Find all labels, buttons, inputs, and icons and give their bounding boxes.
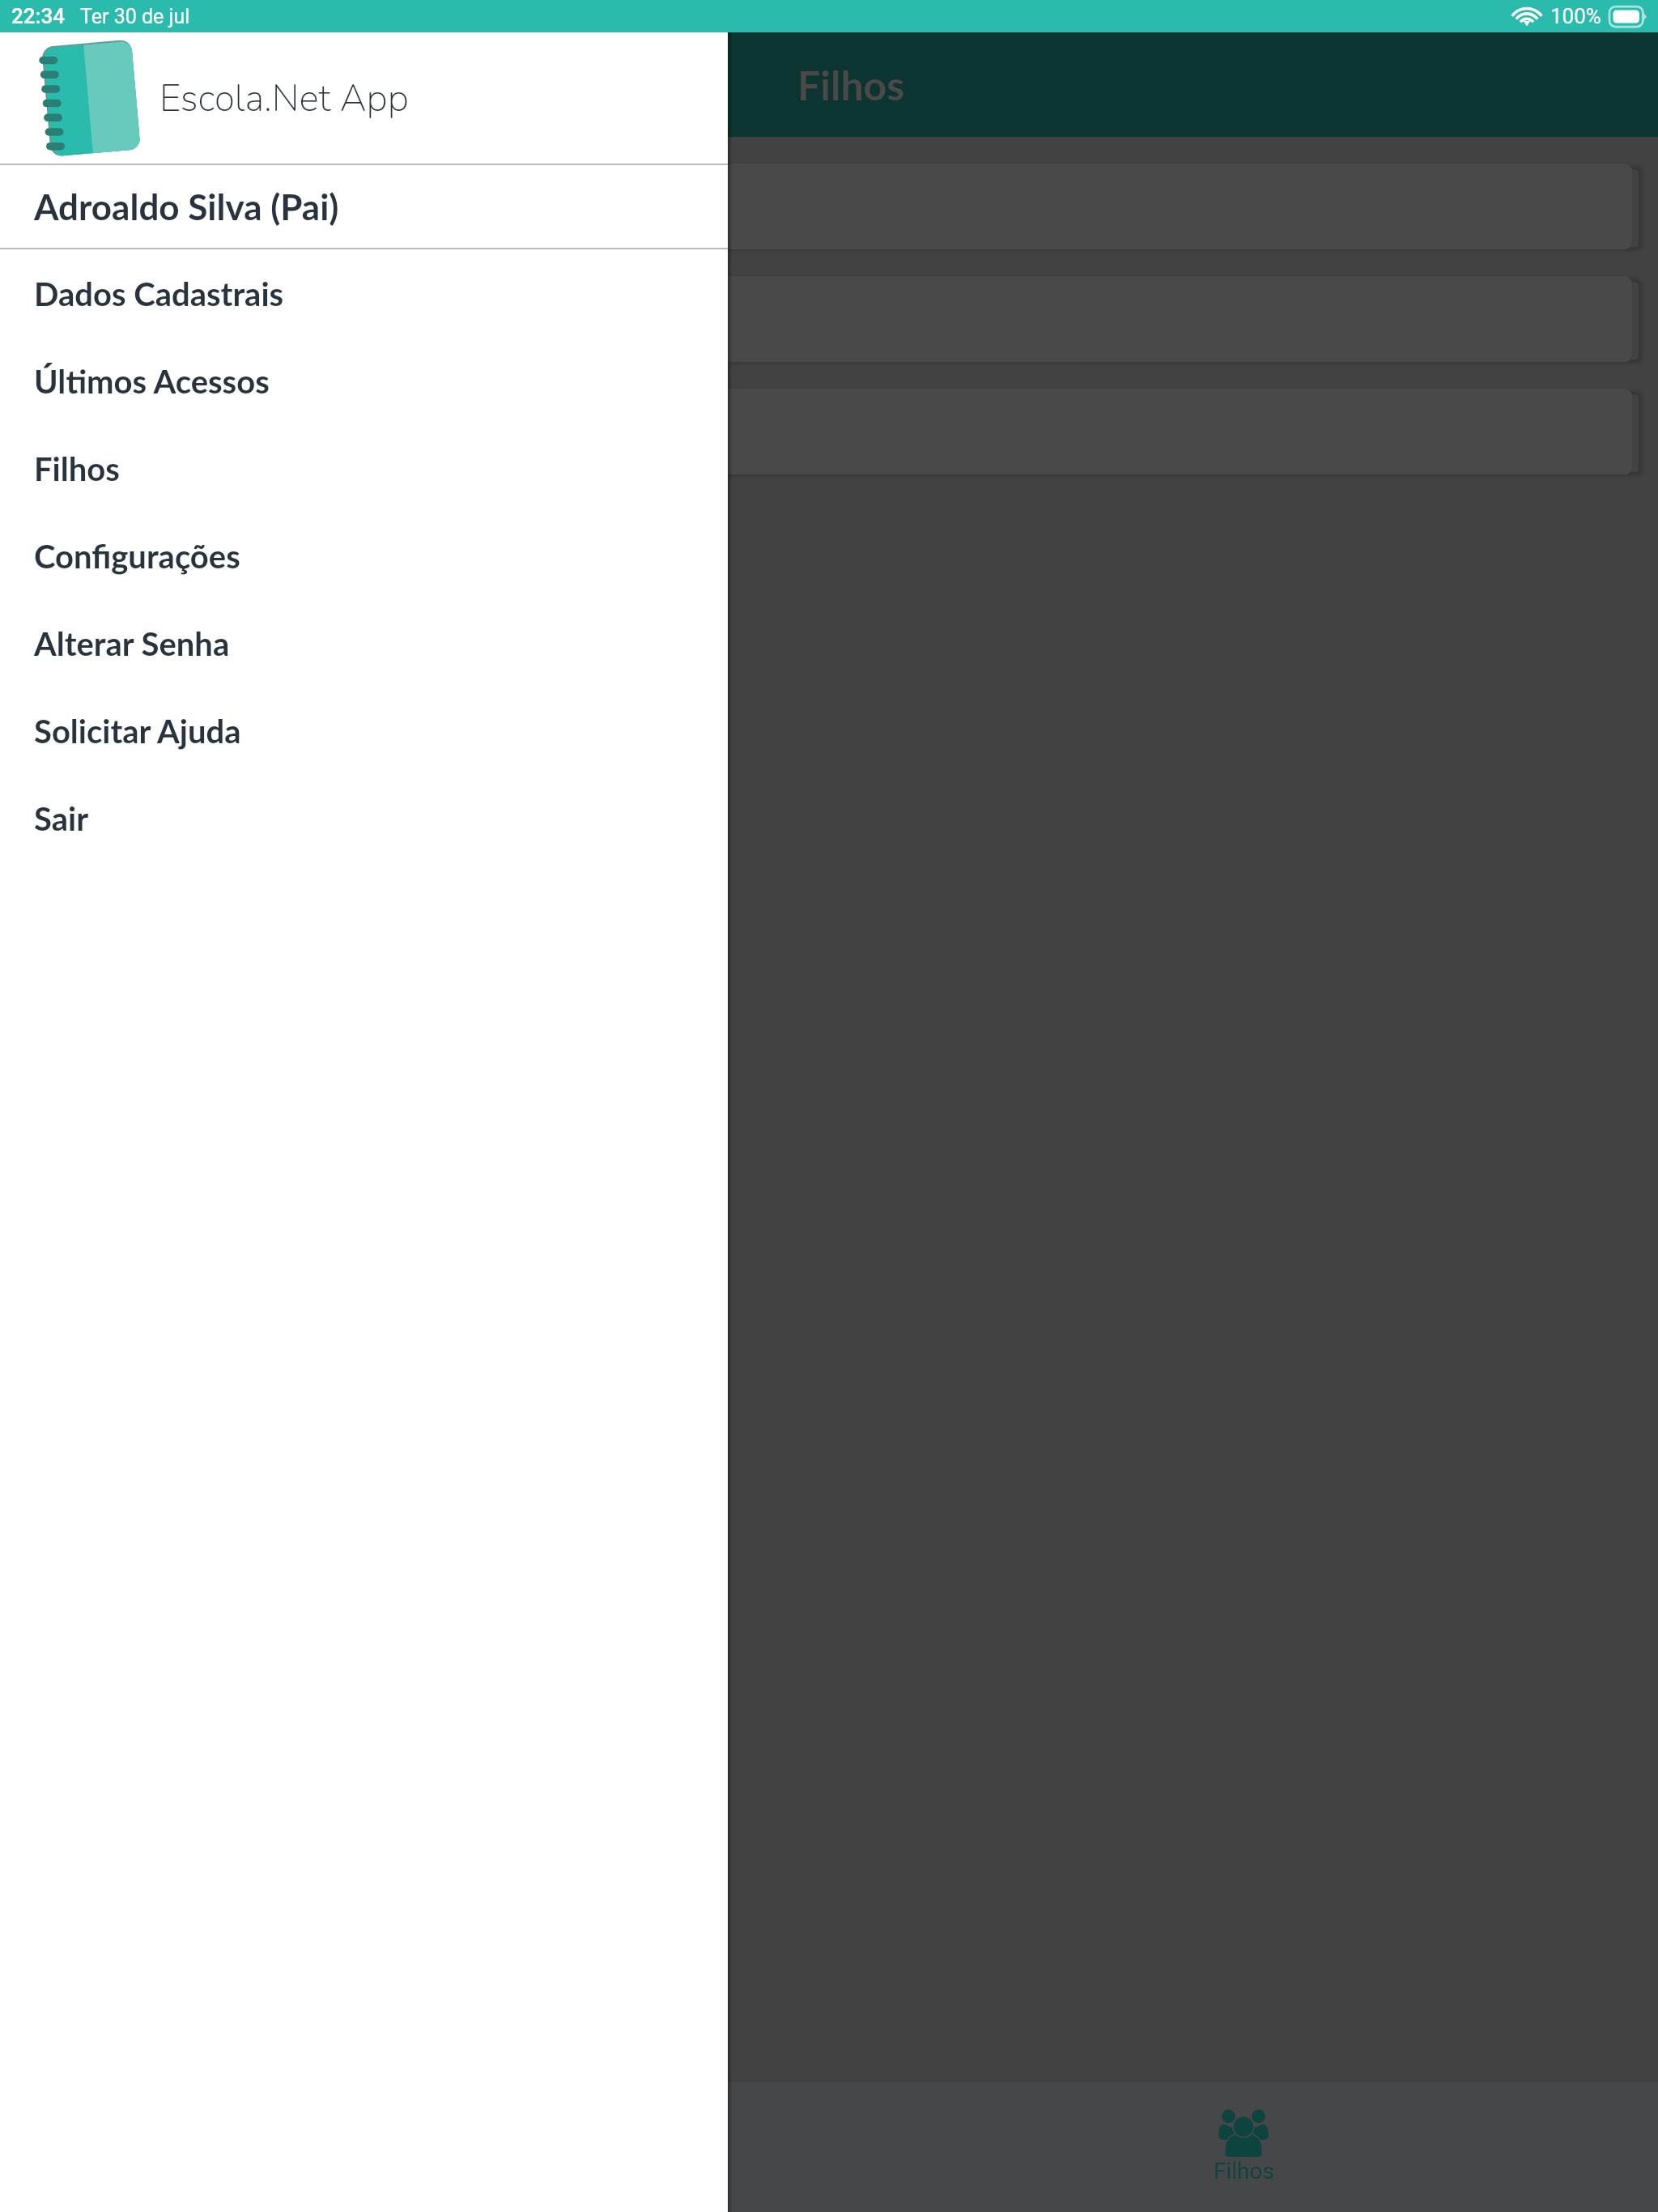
staticText: Alterar Senha [34,624,230,663]
staticText: Filhos [34,449,120,488]
button[interactable]: Filhos [0,2082,829,2212]
staticText: Solicitar Ajuda [34,712,241,751]
button[interactable]: Filhos [829,2082,1658,2212]
button[interactable] [26,389,1632,474]
other: Wi-Fi [1513,6,1541,27]
button[interactable] [26,276,1632,362]
staticText: Filhos [1214,2158,1274,2184]
button[interactable]: Escola.Net App logo [0,32,728,164]
staticText: Últimos Acessos [34,362,270,401]
other: Filhos [1218,2109,1269,2157]
button[interactable]: Alterar Senha [0,600,728,687]
button[interactable] [26,164,1632,249]
staticText: Ter 30 de jul [80,5,190,28]
button[interactable]: Dados Cadastrais [0,250,728,338]
staticText: Configurações [34,537,240,576]
staticText: Escola.Net App [159,73,409,124]
button[interactable]: Sair [0,775,728,862]
button[interactable]: Adroaldo Silva (Pai) [0,165,728,248]
staticText: Filhos [797,61,905,109]
other: Battery 100% [1609,6,1647,27]
button[interactable]: Filhos [0,425,728,513]
button[interactable]: Solicitar Ajuda [0,687,728,775]
staticText: 22:34 [11,4,66,28]
button[interactable]: Configurações [0,513,728,600]
button[interactable]: Últimos Acessos [0,338,728,425]
staticText: Sair [34,799,89,838]
staticText: Adroaldo Silva (Pai) [34,185,339,228]
staticText: 100% [1550,4,1601,28]
staticText: Dados Cadastrais [34,274,284,313]
other: Escola.Net App logo [0,32,164,164]
